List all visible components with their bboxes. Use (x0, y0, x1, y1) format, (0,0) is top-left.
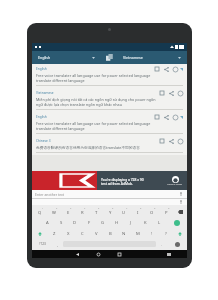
staticText: D (73, 220, 77, 226)
staticText: test ad from AdMob. (101, 181, 133, 185)
staticText: R (81, 210, 84, 216)
button[interactable]: Voice input (178, 199, 184, 205)
button[interactable]: 8 (131, 206, 145, 217)
button[interactable]: Shift (32, 228, 47, 239)
button[interactable]: English (32, 64, 187, 88)
button[interactable]: Play (172, 66, 178, 72)
staticText: F (88, 220, 91, 226)
button[interactable]: J (124, 217, 138, 228)
button[interactable]: 0 (159, 206, 173, 217)
button[interactable]: Copy (154, 66, 160, 72)
button[interactable]: English (32, 112, 187, 136)
button[interactable]: V (89, 228, 103, 239)
button[interactable]: Play (177, 138, 183, 144)
button[interactable]: ?123 (32, 239, 52, 249)
staticText: Free voice translater all language use f… (36, 73, 151, 78)
button[interactable]: Enter another text (35, 190, 184, 198)
staticText: AdMob by Google (167, 183, 183, 185)
staticText: Y (109, 210, 112, 216)
button[interactable]: Z (47, 228, 61, 239)
staticText: . (161, 242, 162, 247)
staticText: S (60, 220, 63, 226)
staticText: 免费语音翻译所有语言使用为您选择的语言translate不同的语言 (36, 145, 140, 150)
button[interactable]: Copy (154, 114, 160, 120)
button[interactable]: N (117, 228, 131, 239)
button[interactable]: M (131, 228, 145, 239)
button[interactable]: 2 (47, 206, 61, 217)
button[interactable]: F (82, 217, 96, 228)
button[interactable]: English (38, 51, 95, 64)
button[interactable]: Play (177, 90, 183, 96)
button[interactable]: Vietnamese (123, 51, 181, 64)
staticText: ?123 (39, 242, 46, 246)
button[interactable]: Shift (173, 228, 187, 239)
button[interactable]: Swap languages (101, 51, 117, 64)
button[interactable]: You're displaying a 728 x 90 (32, 171, 187, 190)
button[interactable]: X (61, 228, 75, 239)
button[interactable]: A (40, 217, 54, 228)
button[interactable]: Share (163, 114, 169, 120)
staticText: Enter another text (35, 192, 65, 197)
button[interactable]: 4 (75, 206, 89, 217)
button[interactable]: D (68, 217, 82, 228)
staticText: Chinese 3 (36, 139, 51, 143)
button[interactable]: 1 (32, 206, 47, 217)
button[interactable]: ? (159, 228, 173, 239)
button[interactable]: L (152, 217, 166, 228)
button[interactable]: Home (88, 250, 109, 258)
button[interactable]: Enter (166, 217, 187, 228)
staticText: translate different language (36, 126, 85, 131)
staticText: Vietnamese (36, 91, 54, 95)
button[interactable]: G (96, 217, 110, 228)
button[interactable]: B (103, 228, 117, 239)
button[interactable]: 7 (117, 206, 131, 217)
button[interactable]: Chinese 3 (32, 136, 187, 155)
staticText: English (38, 55, 51, 60)
button[interactable]: Keyboard (158, 250, 179, 258)
button[interactable]: Back (67, 250, 88, 258)
button[interactable]: Voice input (178, 191, 184, 197)
staticText: Q (38, 210, 42, 216)
button[interactable]: Play (172, 114, 178, 120)
button[interactable]: 3 (61, 206, 75, 217)
button[interactable]: 6 (103, 206, 117, 217)
button[interactable]: Copy (159, 90, 165, 96)
button[interactable]: ! (145, 228, 159, 239)
button[interactable]: 9 (145, 206, 159, 217)
staticText: 7 (126, 207, 128, 210)
button[interactable]: Emoji (167, 239, 187, 249)
staticText: translate different language (36, 78, 85, 83)
staticText: K (144, 220, 147, 226)
button[interactable]: C (75, 228, 89, 239)
staticText: J (130, 220, 132, 226)
staticText: W (52, 210, 56, 216)
staticText: 8 (140, 207, 142, 210)
button[interactable]: Recents (109, 250, 130, 258)
staticText: 5 (98, 207, 100, 210)
button[interactable]: Share (168, 138, 174, 144)
button[interactable]: Vietnamese (32, 88, 187, 112)
staticText: N (122, 231, 126, 237)
staticText: 3 (70, 207, 72, 210)
staticText: ngữ được lựa chọn translate ngôn ngữ khá… (36, 102, 122, 107)
staticText: Vietnamese (123, 55, 143, 60)
button[interactable]: K (138, 217, 152, 228)
staticText: 1 (42, 207, 44, 210)
button[interactable]: 5 (89, 206, 103, 217)
staticText: U (122, 210, 126, 216)
button[interactable]: Share (163, 66, 169, 72)
button[interactable]: Share (168, 90, 174, 96)
staticText: 4 (84, 207, 86, 210)
button[interactable]: S (54, 217, 68, 228)
button[interactable]: H (110, 217, 124, 228)
staticText: 0 (168, 207, 170, 210)
button[interactable]: Backspace (173, 206, 187, 217)
staticText: 9 (154, 207, 156, 210)
staticText: English (36, 115, 47, 119)
staticText: ! (151, 231, 153, 237)
button[interactable]: Comma (52, 239, 63, 249)
button[interactable]: Copy (159, 138, 165, 144)
staticText: L (158, 220, 161, 226)
